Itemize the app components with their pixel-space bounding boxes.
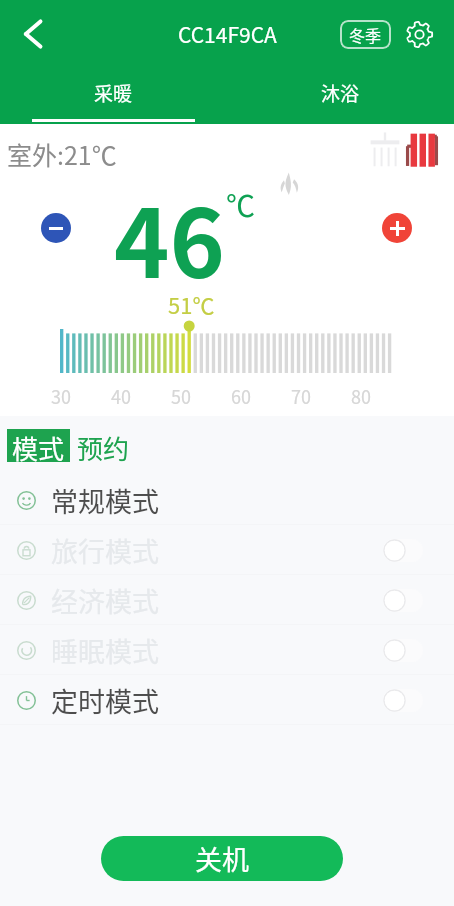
staticText: 冬季 bbox=[349, 23, 382, 46]
staticText: 沐浴 bbox=[321, 79, 360, 107]
staticText: 60 bbox=[231, 383, 251, 409]
staticText: 70 bbox=[291, 383, 311, 409]
button[interactable]: 沐浴 bbox=[227, 68, 454, 124]
staticText: 采暖 bbox=[94, 79, 133, 107]
button[interactable]: 旅行模式 bbox=[0, 525, 454, 575]
button[interactable]: 冬季 bbox=[340, 20, 391, 49]
staticText: 80 bbox=[351, 383, 371, 409]
button[interactable]: 经济模式 toggle bbox=[383, 589, 423, 612]
button[interactable]: 定时模式 toggle bbox=[383, 689, 423, 712]
staticText: 40 bbox=[111, 383, 131, 409]
staticText: 经济模式 bbox=[51, 581, 159, 620]
button[interactable]: 常规模式 bbox=[0, 475, 454, 525]
button[interactable]: 经济模式 bbox=[0, 575, 454, 625]
staticText: 定时模式 bbox=[51, 681, 159, 720]
staticText: ℃ bbox=[226, 183, 256, 225]
staticText: 模式 bbox=[12, 429, 65, 462]
staticText: 50 bbox=[171, 383, 191, 409]
staticText: 46 bbox=[114, 169, 225, 305]
button[interactable]: Decrease temperature bbox=[41, 213, 71, 243]
button[interactable]: 预约 bbox=[75, 429, 132, 462]
button[interactable]: 睡眠模式 toggle bbox=[383, 639, 423, 662]
staticText: 旅行模式 bbox=[51, 531, 159, 570]
button[interactable]: Back bbox=[10, 10, 58, 58]
staticText: 关机 bbox=[195, 839, 249, 878]
staticText: 睡眠模式 bbox=[51, 631, 159, 670]
button[interactable]: Settings bbox=[403, 18, 435, 50]
button[interactable]: 关机 bbox=[101, 836, 343, 881]
staticText: 预约 bbox=[77, 429, 130, 462]
button[interactable]: 采暖 bbox=[0, 68, 227, 124]
staticText: 30 bbox=[51, 383, 71, 409]
button[interactable]: 旅行模式 toggle bbox=[383, 539, 423, 562]
staticText: 51℃ bbox=[168, 288, 215, 320]
staticText: CC14F9CA bbox=[178, 19, 277, 49]
button[interactable]: 睡眠模式 bbox=[0, 625, 454, 675]
button[interactable]: 模式 bbox=[7, 429, 70, 462]
button[interactable]: Increase temperature bbox=[382, 213, 412, 243]
button[interactable]: 定时模式 bbox=[0, 675, 454, 725]
staticText: 室外:21℃ bbox=[7, 136, 117, 172]
staticText: 常规模式 bbox=[51, 481, 159, 520]
